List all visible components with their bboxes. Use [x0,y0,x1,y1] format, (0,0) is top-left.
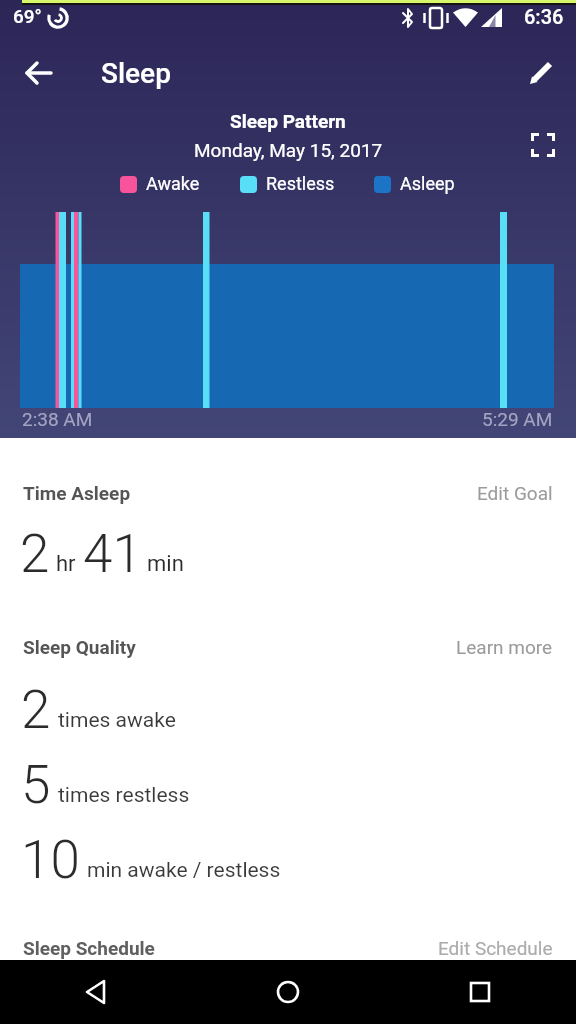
staticText: Sleep [101,57,171,90]
staticText: Sleep Schedule [23,937,155,959]
staticText: 6:36 [524,5,564,28]
button[interactable] [192,960,384,1024]
button[interactable] [520,52,562,94]
staticText: Edit Schedule [438,937,553,959]
button[interactable] [0,960,192,1024]
staticText: times restless [58,783,190,808]
button[interactable]: Edit Goal [477,482,553,504]
staticText: times awake [58,708,176,733]
staticText: Time Asleep [23,482,131,504]
staticText: 2:38 AM [22,408,93,430]
staticText: Learn more [456,636,553,658]
staticText: Sleep Pattern [230,110,346,132]
staticText: 10 [21,829,80,891]
button[interactable]: Learn more [456,636,553,658]
staticText: Edit Goal [477,482,553,504]
staticText: 69° [13,5,42,27]
staticText: Sleep Quality [23,636,136,658]
button[interactable]: Edit Schedule [438,937,553,959]
button[interactable] [384,960,576,1024]
staticText: Awake [146,173,200,194]
staticText: 2 [20,523,50,585]
staticText: 41 [83,523,142,585]
staticText: Monday, May 15, 2017 [194,139,383,161]
staticText: Asleep [400,173,455,194]
button[interactable] [18,52,60,94]
button[interactable] [524,126,562,164]
staticText: 2 [21,679,51,741]
staticText: hr [56,551,76,577]
staticText: Restless [266,173,335,194]
staticText: min [147,551,184,577]
staticText: 5:29 AM [482,408,553,430]
staticText: min awake / restless [87,858,281,883]
staticText: 5 [21,754,51,816]
